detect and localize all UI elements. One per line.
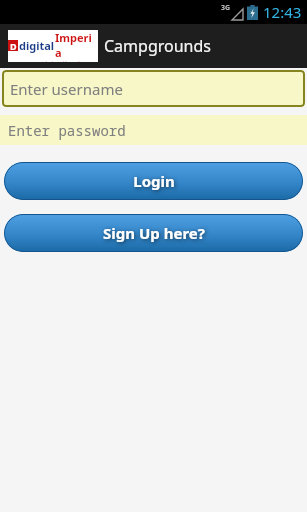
staticText: D <box>10 40 17 51</box>
staticText: 12:43 <box>263 2 302 22</box>
staticText: 3G <box>221 3 231 13</box>
staticText: Enter password <box>8 121 126 140</box>
staticText: Imperia <box>55 30 98 60</box>
staticText: Campgrounds <box>104 35 211 57</box>
staticText: Sign Up here? <box>103 223 205 243</box>
button[interactable]: Digital Imperia logo <box>8 30 98 62</box>
button[interactable]: Enter password <box>0 115 307 145</box>
button[interactable]: Login <box>4 162 303 200</box>
button[interactable]: Sign Up here? <box>4 214 303 252</box>
staticText: Enter username <box>10 79 123 99</box>
staticText: engineering technology to deliver result… <box>24 61 82 62</box>
staticText: Login <box>133 171 175 191</box>
staticText: digital <box>19 38 55 53</box>
button[interactable]: Enter username <box>2 70 305 107</box>
